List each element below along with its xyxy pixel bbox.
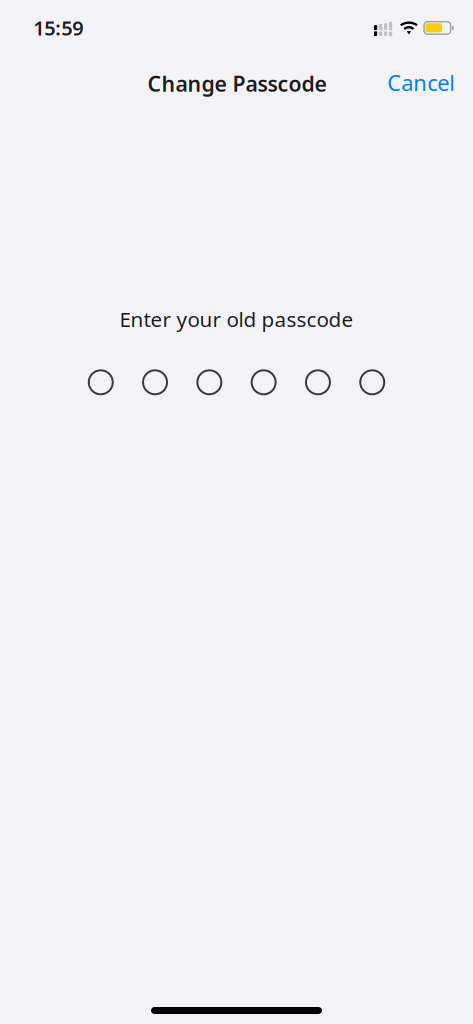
staticText: 15:59 [33,14,83,41]
staticText: Change Passcode [147,69,326,98]
staticText: Enter your old passcode [120,305,354,333]
button[interactable]: Cancel [387,67,455,97]
staticText: Cancel [387,67,455,97]
